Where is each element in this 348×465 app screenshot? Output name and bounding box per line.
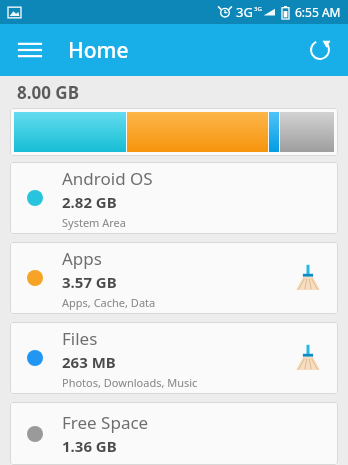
button[interactable]: Refresh (300, 30, 340, 70)
staticText: Files (62, 327, 98, 350)
staticText: Free Space (62, 411, 149, 434)
staticText: Photos, Downloads, Music (62, 375, 198, 390)
staticText: 3G (254, 5, 262, 13)
staticText: Home (68, 36, 129, 65)
staticText: 263 MB (62, 352, 116, 372)
staticText: System Area (62, 215, 126, 230)
staticText: 3.57 GB (62, 272, 117, 292)
staticText: 8.00 GB (17, 81, 79, 104)
staticText: Android OS (62, 167, 153, 190)
button[interactable]: Clean Apps (290, 260, 326, 296)
button[interactable]: Files (10, 322, 338, 394)
button[interactable]: Open navigation menu (10, 30, 50, 70)
staticText: 6:55 AM (295, 4, 341, 20)
button[interactable]: Apps (10, 242, 338, 314)
button[interactable]: Android OS (10, 162, 338, 234)
button[interactable]: Clean Files (290, 340, 326, 376)
staticText: 3G (236, 3, 253, 21)
staticText: 1.36 GB (62, 436, 117, 456)
staticText: Apps, Cache, Data (62, 295, 156, 310)
staticText: 2.82 GB (62, 192, 117, 212)
staticText: Apps (62, 247, 102, 270)
button[interactable]: Free Space (10, 402, 338, 465)
button[interactable] (14, 112, 334, 152)
